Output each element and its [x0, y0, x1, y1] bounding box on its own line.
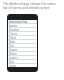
button[interactable]: Kiwi	[8, 60, 37, 63]
button[interactable]: Melon	[8, 52, 37, 55]
staticText: list of items and details views	[3, 5, 50, 10]
staticText: Melon	[9, 52, 17, 55]
button[interactable]: Apples	[8, 24, 37, 27]
staticText: Elder	[9, 40, 16, 43]
button[interactable]: Limes	[8, 64, 37, 67]
staticText: Dates	[9, 36, 16, 39]
button[interactable]: Dates	[8, 36, 37, 39]
button[interactable]: Figs	[8, 44, 37, 47]
button[interactable]: Grapes	[8, 48, 37, 51]
staticText: Apples	[9, 24, 18, 27]
staticText: Inventory list	[9, 20, 28, 23]
staticText: Figs	[9, 44, 14, 47]
button[interactable]: Bananas	[8, 28, 37, 31]
button[interactable]: Juniper	[8, 56, 37, 59]
button[interactable]: Elder	[8, 40, 37, 43]
staticText: Cherry	[9, 32, 18, 35]
staticText: Juniper	[9, 56, 18, 59]
button[interactable]: Cherry	[8, 32, 37, 35]
staticText: Grapes	[9, 48, 18, 51]
staticText: Limes	[9, 64, 17, 67]
button[interactable]: Inventory list	[8, 20, 37, 23]
staticText: Kiwi	[9, 60, 14, 63]
staticText: The Android app shows the same	[3, 1, 56, 6]
staticText: Bananas	[9, 28, 20, 31]
